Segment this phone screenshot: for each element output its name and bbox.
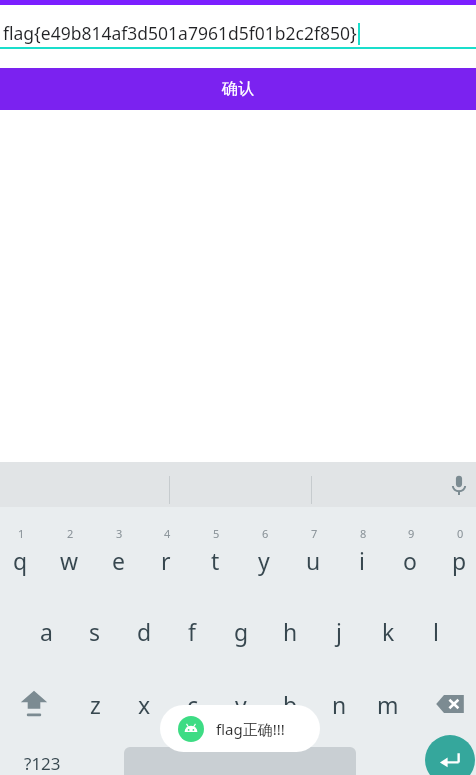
staticText: 8 <box>360 526 367 541</box>
staticText: flag{e49b814af3d501a7961d5f01b2c2f850} <box>3 21 357 45</box>
staticText: 7 <box>311 526 318 541</box>
staticText: 2 <box>67 526 74 541</box>
staticText: k <box>382 616 395 647</box>
button[interactable]: 确认 <box>0 68 476 110</box>
staticText: m <box>377 689 399 720</box>
button[interactable]: h <box>266 602 314 660</box>
button[interactable]: n <box>315 675 363 733</box>
staticText: x <box>138 689 151 720</box>
staticText: q <box>13 545 28 576</box>
button[interactable]: ?123 <box>8 740 76 775</box>
staticText: f <box>188 616 196 647</box>
button[interactable]: v <box>217 675 265 733</box>
button[interactable]: u <box>289 522 337 586</box>
staticText: a <box>40 616 53 647</box>
staticText: j <box>336 616 342 647</box>
button[interactable]: m <box>364 675 412 733</box>
button[interactable]: w <box>45 522 93 586</box>
staticText: 4 <box>164 526 171 541</box>
staticText: p <box>452 545 467 576</box>
button[interactable]: Shift <box>8 675 60 733</box>
button[interactable]: Space <box>124 747 356 775</box>
staticText: h <box>283 616 298 647</box>
button[interactable]: e <box>94 522 142 586</box>
staticText: y <box>258 545 270 576</box>
staticText: g <box>234 616 249 647</box>
staticText: 确认 <box>222 79 254 99</box>
staticText: z <box>90 689 101 720</box>
button[interactable]: c <box>169 675 217 733</box>
button[interactable]: Voice input <box>437 469 476 501</box>
staticText: u <box>306 545 321 576</box>
staticText: ?123 <box>24 752 61 775</box>
button[interactable]: q <box>0 522 44 586</box>
staticText: r <box>161 545 171 576</box>
button[interactable]: d <box>120 602 168 660</box>
staticText: 3 <box>116 526 123 541</box>
button[interactable]: k <box>364 602 412 660</box>
button[interactable]: f <box>168 602 216 660</box>
button[interactable]: i <box>338 522 386 586</box>
staticText: 1 <box>18 526 25 541</box>
staticText: t <box>211 545 220 576</box>
button[interactable]: j <box>315 602 363 660</box>
staticText: 0 <box>457 526 464 541</box>
button[interactable]: s <box>71 602 119 660</box>
staticText: i <box>359 545 365 576</box>
staticText: b <box>283 689 298 720</box>
staticText: v <box>235 689 247 720</box>
button[interactable]: Backspace <box>424 675 476 733</box>
staticText: flag正确!!! <box>216 719 285 739</box>
staticText: 9 <box>408 526 415 541</box>
staticText: n <box>332 689 347 720</box>
button[interactable]: b <box>266 675 314 733</box>
staticText: e <box>112 545 125 576</box>
button[interactable]: o <box>386 522 434 586</box>
button[interactable]: l <box>412 602 460 660</box>
button[interactable]: r <box>142 522 190 586</box>
staticText: o <box>403 545 417 576</box>
button[interactable]: flag{e49b814af3d501a7961d5f01b2c2f850} <box>0 5 476 49</box>
staticText: 6 <box>262 526 269 541</box>
button[interactable]: p <box>435 522 476 586</box>
button[interactable]: g <box>217 602 265 660</box>
button[interactable]: t <box>191 522 239 586</box>
staticText: 5 <box>213 526 220 541</box>
staticText: d <box>137 616 152 647</box>
button[interactable]: Enter <box>425 735 475 775</box>
staticText: l <box>433 616 439 647</box>
staticText: s <box>89 616 101 647</box>
staticText: c <box>187 689 199 720</box>
button[interactable]: x <box>120 675 168 733</box>
button[interactable]: z <box>71 675 119 733</box>
button[interactable]: a <box>22 602 70 660</box>
button[interactable]: y <box>240 522 288 586</box>
staticText: w <box>60 545 79 576</box>
